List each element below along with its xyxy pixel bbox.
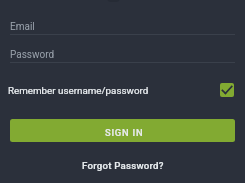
staticText: SIGN IN [105, 127, 144, 138]
button[interactable]: SIGN IN [10, 119, 235, 142]
staticText: Email [10, 21, 35, 33]
staticText: Password [10, 49, 55, 61]
button[interactable]: Forgot Password? [76, 158, 170, 173]
button[interactable]: Password [10, 49, 235, 65]
staticText: Remember username/password [8, 85, 149, 96]
button[interactable]: Remember username and password [220, 83, 234, 97]
button[interactable]: Email [10, 21, 235, 37]
button[interactable]: Remember username/password [8, 82, 235, 98]
staticText: Forgot Password? [82, 160, 164, 171]
